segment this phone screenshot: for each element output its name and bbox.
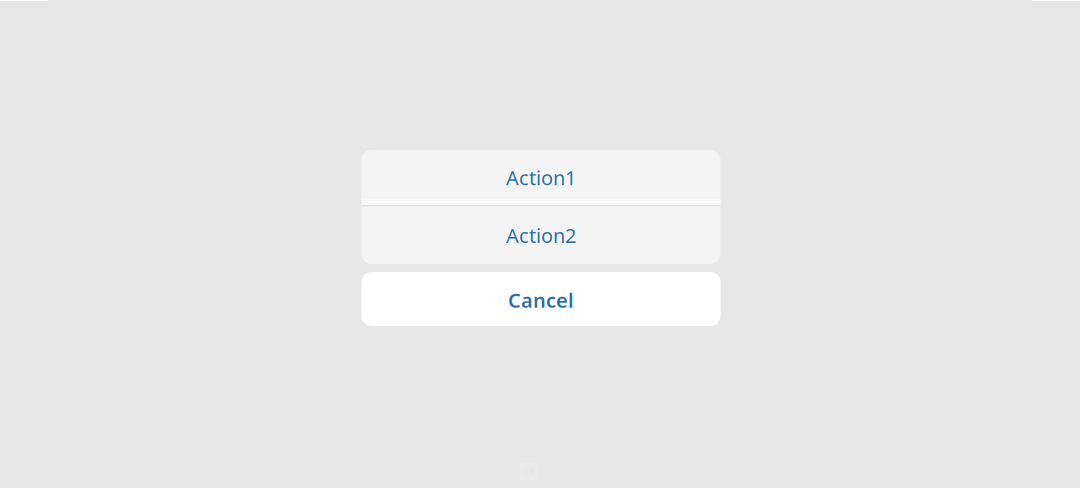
button[interactable]: Action1 (361, 150, 720, 205)
staticText: Action1 (506, 164, 576, 191)
button[interactable]: Cancel (361, 272, 720, 326)
staticText: Action2 (506, 222, 576, 249)
button[interactable]: Action2 (361, 206, 720, 264)
staticText: Cancel (508, 287, 574, 313)
